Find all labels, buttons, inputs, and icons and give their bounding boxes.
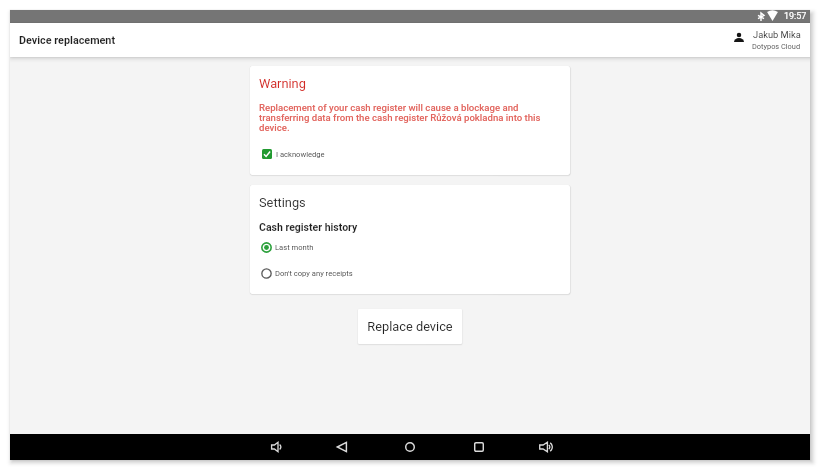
staticText: 19:57 [784,11,807,22]
staticText: I acknowledge [276,150,325,159]
button[interactable]: Replace device [358,309,462,344]
staticText: Cash register history [259,221,358,233]
staticText: Replacement of your cash register will c… [259,102,561,134]
button[interactable]: Volume up [534,436,556,458]
button[interactable]: Back [331,436,353,458]
staticText: Dotypos Cloud [752,42,801,51]
staticText: Settings [259,195,306,210]
staticText: Last month [275,243,314,252]
staticText: Device replacement [19,34,116,47]
button[interactable]: Home [399,436,421,458]
button[interactable]: I acknowledge [262,149,325,159]
staticText: Jakub Mika [753,29,801,40]
button[interactable]: Account [734,29,801,51]
button[interactable]: Don't copy any receipts [257,264,353,282]
staticText: Warning [259,76,306,91]
staticText: Don't copy any receipts [275,269,353,278]
button[interactable]: Last month [257,238,314,256]
button[interactable]: Volume down [265,436,287,458]
other: Account [734,33,744,42]
button[interactable]: Recents [468,436,490,458]
staticText: Replace device [367,319,453,334]
